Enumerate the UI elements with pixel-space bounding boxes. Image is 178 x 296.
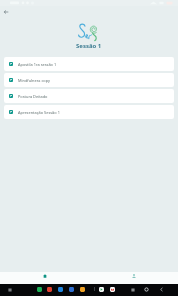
button[interactable]: Back	[159, 287, 164, 292]
staticText: Postura Deitado	[18, 94, 48, 99]
button[interactable]: Postura Deitado	[4, 89, 174, 103]
button[interactable]: Home	[144, 287, 149, 292]
button[interactable]: Back	[0, 6, 11, 17]
staticText: Mindfulness copy	[18, 78, 50, 83]
staticText: Apresentação Sessão 1	[18, 110, 60, 115]
button[interactable]: Apresentação Sessão 1	[4, 105, 174, 119]
staticText: Sessão 1	[76, 42, 102, 50]
button[interactable]: Apostila 1ra sessão 1	[4, 57, 174, 71]
button[interactable]: Home	[0, 272, 89, 284]
button[interactable]: Mindfulness copy	[4, 73, 174, 87]
staticText: Apostila 1ra sessão 1	[18, 62, 57, 67]
button[interactable]: Profile	[89, 272, 178, 284]
button[interactable]: Recents	[131, 288, 135, 292]
